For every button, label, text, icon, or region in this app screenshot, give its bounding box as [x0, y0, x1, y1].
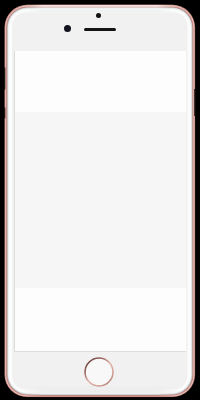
button[interactable]: Home — [84, 357, 114, 387]
